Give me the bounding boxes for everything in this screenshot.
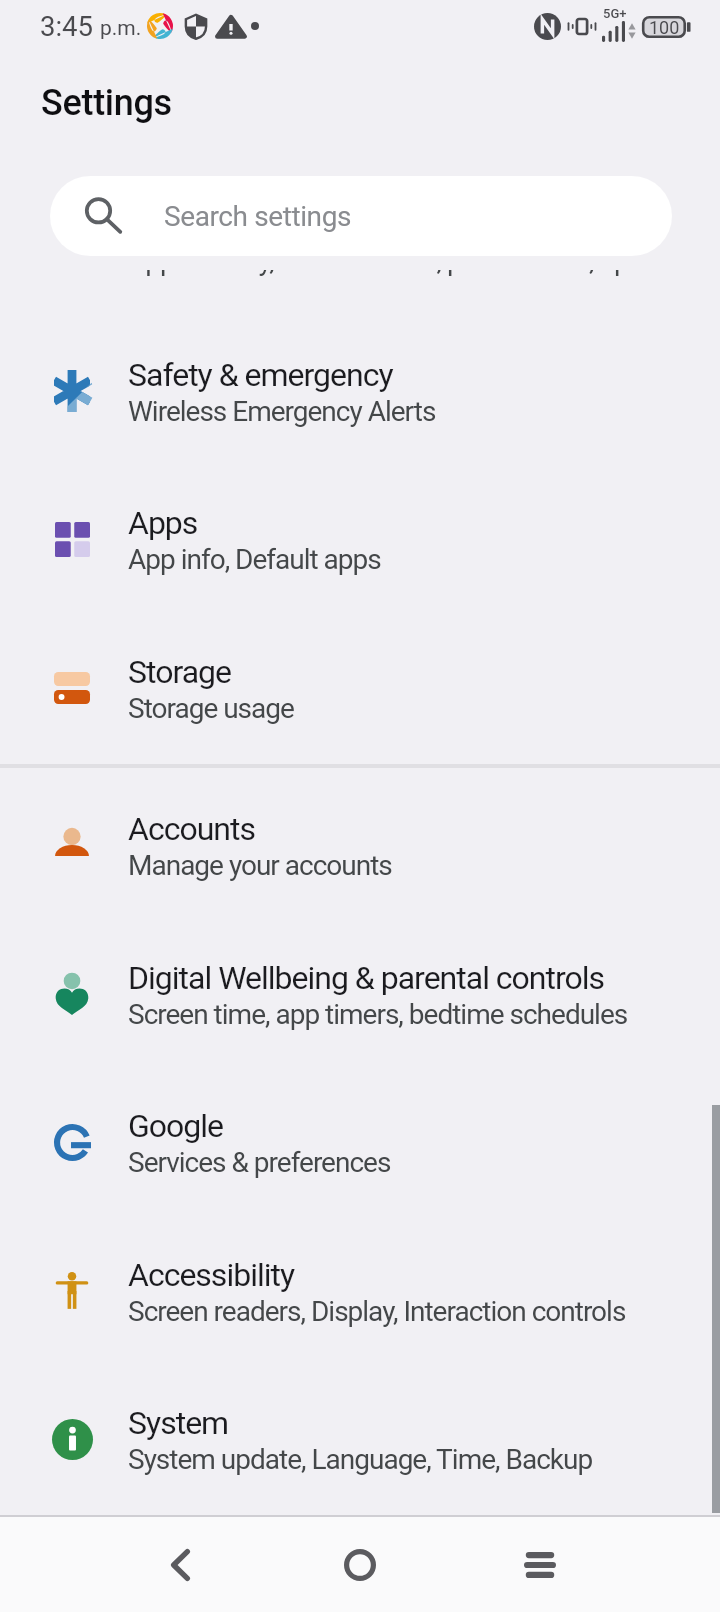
button[interactable]: Digital Wellbeing & parental controls bbox=[0, 920, 720, 1069]
button[interactable]: Accessibility bbox=[0, 1217, 720, 1366]
button[interactable]: Accounts bbox=[0, 771, 720, 920]
button[interactable]: Home bbox=[312, 1517, 408, 1612]
staticText: 3:45 bbox=[40, 10, 94, 42]
staticText: Storage usage bbox=[128, 692, 294, 725]
button[interactable]: Storage bbox=[0, 614, 720, 763]
button[interactable]: Apps bbox=[0, 465, 720, 614]
staticText: System update, Language, Time, Backup bbox=[128, 1443, 593, 1476]
button[interactable]: Safety & emergency bbox=[0, 317, 720, 466]
staticText: Accessibility bbox=[128, 1256, 295, 1294]
staticText: App security, device unlock, permissions… bbox=[128, 244, 694, 277]
staticText: Wireless Emergency Alerts bbox=[128, 395, 436, 428]
staticText: Search settings bbox=[164, 200, 352, 233]
button[interactable]: Recent apps bbox=[492, 1517, 588, 1612]
button[interactable]: System bbox=[0, 1365, 720, 1514]
staticText: System bbox=[128, 1404, 229, 1442]
staticText: 100 bbox=[649, 17, 680, 38]
staticText: App info, Default apps bbox=[128, 543, 381, 576]
button[interactable]: Google bbox=[0, 1068, 720, 1217]
staticText: Accounts bbox=[128, 810, 255, 848]
staticText: Apps bbox=[128, 504, 198, 542]
staticText: Screen time, app timers, bedtime schedul… bbox=[128, 998, 628, 1031]
staticText: p.m. bbox=[100, 16, 142, 41]
staticText: Screen readers, Display, Interaction con… bbox=[128, 1295, 626, 1328]
staticText: Settings bbox=[41, 82, 172, 124]
staticText: Safety & emergency bbox=[128, 356, 393, 394]
staticText: Google bbox=[128, 1107, 224, 1145]
staticText: Manage your accounts bbox=[128, 849, 392, 882]
staticText: Storage bbox=[128, 653, 231, 691]
staticText: 5G+ bbox=[603, 6, 626, 21]
button[interactable]: Search settings bbox=[50, 176, 672, 256]
staticText: Services & preferences bbox=[128, 1146, 391, 1179]
staticText: Digital Wellbeing & parental controls bbox=[128, 959, 605, 997]
button[interactable]: Back bbox=[132, 1517, 228, 1612]
